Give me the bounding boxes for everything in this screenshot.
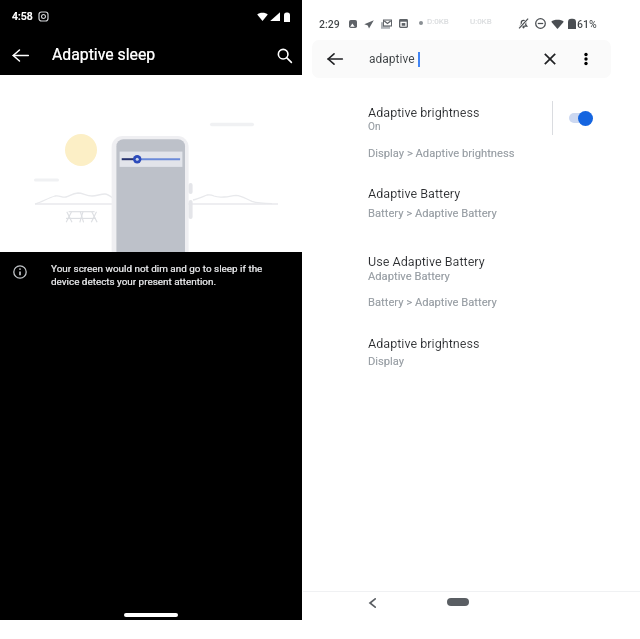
staticText: Battery > Adaptive Battery <box>368 207 497 220</box>
staticText: Adaptive Battery <box>368 270 450 283</box>
button[interactable]: Adaptive brightness <box>303 96 640 164</box>
staticText: 4:58 <box>12 10 33 22</box>
button[interactable]: Clear search <box>537 46 563 72</box>
staticText: Use Adaptive Battery <box>368 254 485 269</box>
staticText: U:0KB <box>470 17 492 26</box>
staticText: 61% <box>577 18 597 30</box>
button[interactable]: Back <box>322 46 348 72</box>
button[interactable]: Home <box>124 613 178 617</box>
button[interactable]: Back <box>4 39 36 71</box>
button[interactable]: Home <box>447 598 469 606</box>
button[interactable]: Adaptive brightness on <box>561 102 605 134</box>
staticText: Battery > Adaptive Battery <box>368 296 497 309</box>
staticText: D:0KB <box>427 17 449 26</box>
staticText: Adaptive sleep <box>52 45 156 64</box>
button[interactable]: More options <box>573 46 599 72</box>
staticText: adaptive <box>369 52 415 66</box>
staticText: Adaptive brightness <box>368 105 480 120</box>
staticText: Your screen would not dim and go to slee… <box>51 263 263 288</box>
button[interactable]: Use Adaptive Battery <box>303 248 640 312</box>
button[interactable]: Adaptive brightness <box>303 330 640 376</box>
staticText: Adaptive brightness <box>368 336 480 351</box>
staticText: On <box>368 121 381 133</box>
staticText: 2:29 <box>319 18 340 30</box>
staticText: Adaptive Battery <box>368 186 461 201</box>
button[interactable]: Search <box>268 39 300 71</box>
button[interactable]: Adaptive Battery <box>303 180 640 228</box>
staticText: Display > Adaptive brightness <box>368 147 515 160</box>
staticText: Display <box>368 355 405 368</box>
button[interactable]: Back <box>358 589 386 617</box>
